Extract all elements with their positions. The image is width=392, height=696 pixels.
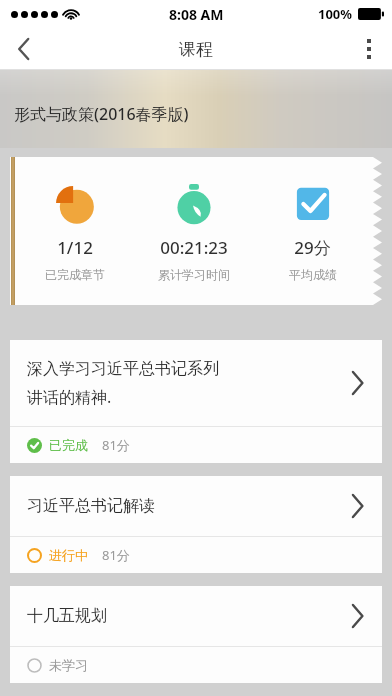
staticText: 累计学习时间 bbox=[158, 267, 230, 282]
staticText: 形式与政策(2016春季版) bbox=[14, 103, 189, 125]
staticText: 已完成章节 bbox=[45, 267, 105, 282]
staticText: 已完成 bbox=[49, 437, 88, 453]
button[interactable]: 习近平总书记解读 bbox=[10, 476, 382, 573]
staticText: 29分 bbox=[294, 236, 331, 259]
staticText: 81分 bbox=[102, 436, 130, 454]
button[interactable]: 十几五规划 bbox=[10, 586, 382, 683]
staticText: 进行中 bbox=[49, 547, 88, 563]
staticText: 8:08 AM bbox=[169, 5, 224, 24]
button[interactable]: Back bbox=[0, 28, 48, 70]
staticText: 平均成绩 bbox=[289, 267, 337, 282]
staticText: 100% bbox=[318, 5, 353, 23]
staticText: 1/12 bbox=[57, 236, 93, 259]
staticText: 00:21:23 bbox=[160, 236, 228, 259]
staticText: 深入学习习近平总书记系列 讲话的精神. bbox=[27, 359, 219, 408]
staticText: 十几五规划 bbox=[27, 606, 107, 626]
staticText: 课程 bbox=[179, 39, 213, 60]
button[interactable]: 1/12 bbox=[10, 157, 382, 305]
button[interactable]: More options bbox=[346, 28, 392, 70]
button[interactable]: 深入学习习近平总书记系列 讲话的精神. bbox=[10, 340, 382, 463]
staticText: 未学习 bbox=[49, 657, 88, 673]
staticText: 习近平总书记解读 bbox=[27, 496, 155, 516]
staticText: 81分 bbox=[102, 546, 130, 564]
